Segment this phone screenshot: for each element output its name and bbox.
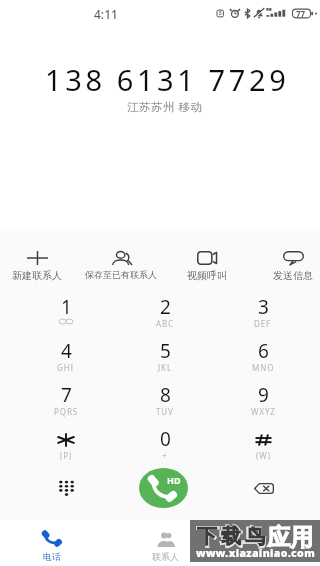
staticText: ABC (156, 318, 175, 329)
button[interactable]: 8 (116, 382, 214, 425)
staticText: 6 (258, 338, 269, 364)
staticText: + (162, 450, 168, 461)
staticText: 77 (296, 8, 306, 19)
staticText: 保存至已有联系人 (85, 269, 157, 280)
staticText: 5 (160, 338, 171, 364)
staticText: 4 (61, 338, 72, 364)
staticText: WXYZ (251, 406, 276, 417)
staticText: (P) (60, 450, 73, 461)
staticText: PQRS (54, 406, 79, 417)
button[interactable]: 电话 (7, 520, 97, 566)
staticText: 新建联系人 (12, 269, 62, 282)
staticText: 2 (160, 294, 171, 320)
staticText: HD (167, 474, 181, 486)
staticText: 3 (258, 294, 269, 320)
button[interactable]: 保存至已有联系人 (79, 240, 163, 284)
button[interactable]: 4 (17, 338, 115, 381)
staticText: 联系人 (152, 551, 179, 562)
staticText: 7 (61, 382, 72, 408)
staticText: TUV (156, 406, 174, 417)
button[interactable]: 新建联系人 (0, 240, 79, 284)
button[interactable]: 5 (116, 338, 214, 381)
staticText: (W) (256, 450, 271, 461)
button[interactable]: 2 (116, 294, 214, 337)
staticText: 1 (61, 294, 72, 320)
button[interactable]: 0 (116, 426, 214, 469)
staticText: 8 (160, 382, 171, 408)
staticText: 电话 (43, 551, 61, 562)
staticText: 138 6131 7729 (45, 60, 290, 92)
staticText: 0 (160, 426, 171, 452)
staticText: 收藏 (269, 551, 287, 562)
button[interactable]: 1 (17, 294, 115, 337)
button[interactable]: 3 (214, 294, 312, 337)
button[interactable]: (P) (17, 426, 115, 469)
staticText: 下载鸟 (197, 524, 270, 549)
staticText: 发送信息 (273, 269, 313, 282)
staticText: MNO (252, 362, 275, 373)
staticText: 下载鸟 (196, 523, 267, 552)
button[interactable]: 收藏 (233, 520, 320, 566)
staticText: GHI (57, 362, 75, 373)
staticText: 9 (258, 382, 269, 408)
button[interactable]: (W) (214, 426, 312, 469)
button[interactable]: 联系人 (120, 520, 210, 566)
staticText: 应用 (267, 523, 314, 552)
button[interactable]: 发送信息 (251, 240, 320, 284)
staticText: 4:11 (94, 6, 118, 22)
button[interactable]: 9 (214, 382, 312, 425)
staticText: www.xiazainiao.com (196, 546, 315, 560)
button[interactable]: 6 (214, 338, 312, 381)
button[interactable]: Delete (233, 466, 293, 510)
button[interactable]: 7 (17, 382, 115, 425)
staticText: 视频呼叫 (187, 269, 227, 282)
staticText: DEF (254, 318, 272, 329)
staticText: JKL (158, 362, 173, 373)
button[interactable]: 视频呼叫 (165, 240, 249, 284)
button[interactable]: Show keypad (36, 466, 96, 510)
staticText: 江苏苏州 移动 (127, 99, 203, 113)
button[interactable]: Call (139, 468, 188, 508)
